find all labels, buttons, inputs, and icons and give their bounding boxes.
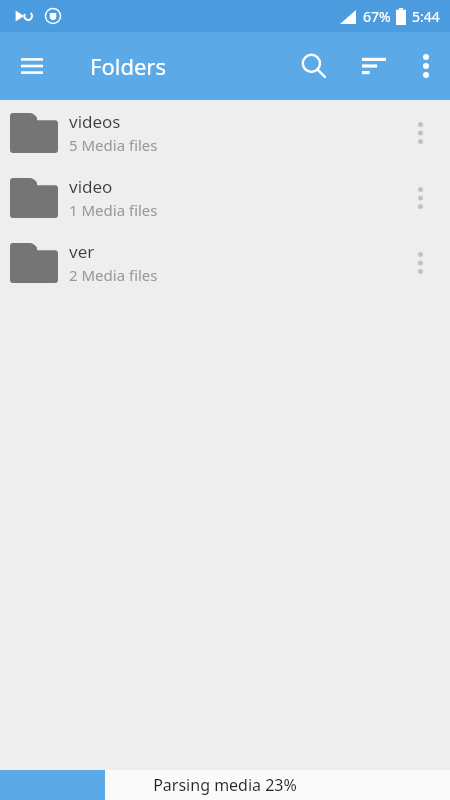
button[interactable]: videos <box>0 100 450 165</box>
button[interactable]: Sort <box>350 42 398 90</box>
button[interactable]: Folder options <box>396 109 444 157</box>
staticText: 1 Media files <box>69 200 158 220</box>
staticText: Folders <box>90 51 166 81</box>
staticText: 5:44 <box>412 7 440 26</box>
button[interactable]: Folder options <box>396 174 444 222</box>
button[interactable]: video <box>0 165 450 230</box>
button[interactable]: More options <box>402 42 450 90</box>
staticText: Parsing media 23% <box>153 774 297 796</box>
button[interactable]: Search <box>290 42 338 90</box>
staticText: video <box>69 175 113 198</box>
button[interactable]: Folder options <box>396 239 444 287</box>
button[interactable]: Open navigation drawer <box>8 42 56 90</box>
staticText: 5 Media files <box>69 135 158 155</box>
staticText: 2 Media files <box>69 265 158 285</box>
button[interactable]: ver <box>0 230 450 295</box>
staticText: ver <box>69 240 95 263</box>
staticText: videos <box>69 110 121 133</box>
staticText: 67% <box>363 7 391 26</box>
